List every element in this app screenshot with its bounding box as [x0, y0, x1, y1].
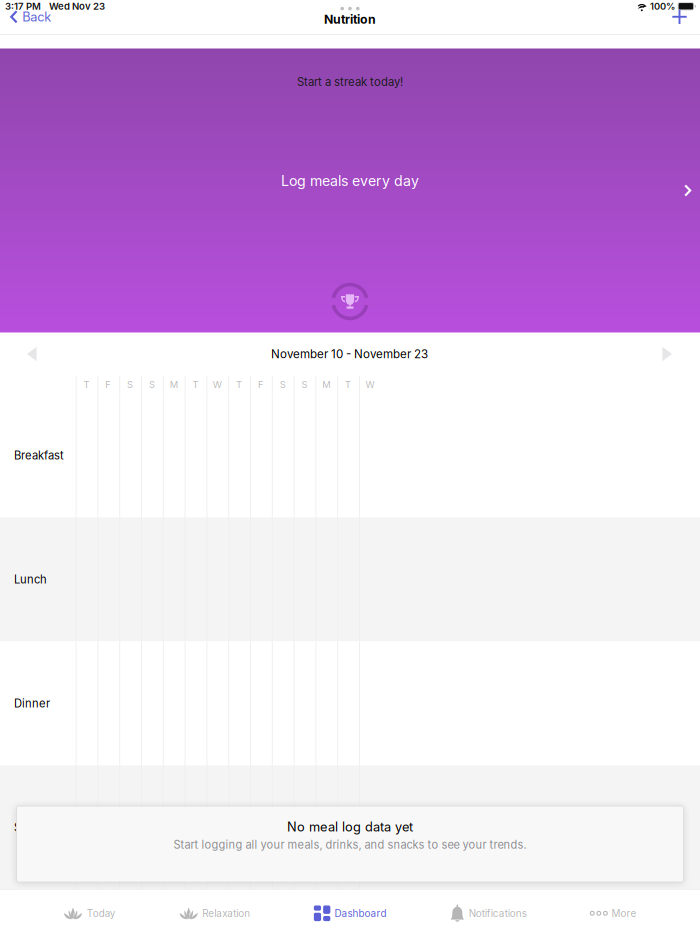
- staticText: Lunch: [14, 573, 47, 586]
- staticText: S: [149, 379, 155, 390]
- staticText: Dinner: [14, 697, 50, 710]
- staticText: 100%: [650, 1, 675, 12]
- staticText: Relaxation: [202, 907, 250, 919]
- staticText: S: [280, 379, 286, 390]
- staticText: M: [170, 379, 178, 390]
- staticText: Breakfast: [14, 449, 64, 462]
- staticText: 3:17 PM: [5, 0, 41, 12]
- staticText: More: [611, 907, 636, 919]
- staticText: Notifications: [469, 907, 527, 919]
- button[interactable]: More: [590, 890, 636, 933]
- staticText: Today: [87, 907, 116, 919]
- staticText: Log meals every day: [281, 172, 419, 189]
- staticText: S: [127, 379, 133, 390]
- staticText: Snack: [14, 821, 46, 834]
- staticText: November 10 - November 23: [271, 347, 428, 361]
- staticText: Start logging all your meals, drinks, an…: [173, 838, 526, 851]
- button[interactable]: Add: [671, 10, 700, 24]
- staticText: W: [365, 379, 374, 390]
- staticText: F: [105, 379, 111, 390]
- staticText: S: [301, 379, 307, 390]
- staticText: W: [213, 379, 222, 390]
- staticText: T: [83, 379, 89, 390]
- staticText: Back: [22, 9, 51, 24]
- button[interactable]: Back: [0, 10, 59, 24]
- staticText: Start a streak today!: [297, 75, 403, 89]
- staticText: F: [258, 379, 264, 390]
- button[interactable]: Dashboard: [314, 890, 387, 933]
- staticText: Wed Nov 23: [49, 0, 105, 12]
- staticText: T: [192, 379, 198, 390]
- staticText: No meal log data yet: [287, 819, 413, 834]
- button[interactable]: Notifications: [450, 890, 527, 933]
- button[interactable]: Relaxation: [179, 890, 250, 933]
- staticText: Dashboard: [335, 907, 387, 919]
- staticText: M: [322, 379, 330, 390]
- button[interactable]: Today: [63, 890, 116, 933]
- staticText: T: [345, 379, 351, 390]
- button[interactable]: Next week: [651, 336, 683, 372]
- staticText: Nutrition: [324, 12, 376, 27]
- staticText: T: [236, 379, 242, 390]
- button[interactable]: Previous week: [16, 336, 48, 372]
